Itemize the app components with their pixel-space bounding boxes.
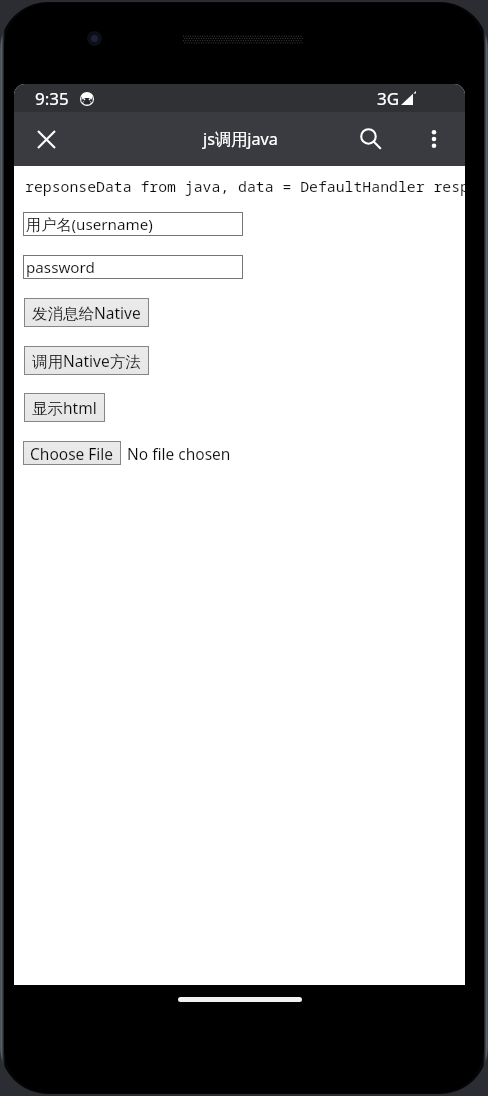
staticText: 发消息给Native — [32, 302, 141, 323]
button[interactable]: 显示html — [24, 393, 105, 422]
button[interactable]: Search — [351, 119, 391, 159]
button[interactable]: More options — [414, 119, 454, 159]
button[interactable]: password — [23, 255, 243, 279]
staticText: 用户名(username) — [26, 214, 153, 235]
staticText: repsonseData from java, data = DefaultHa… — [25, 176, 465, 196]
staticText: No file chosen — [127, 443, 231, 464]
staticText: 显示html — [32, 397, 97, 418]
staticText: 调用Native方法 — [32, 350, 141, 371]
button[interactable]: 用户名(username) — [23, 212, 243, 236]
staticText: Choose File — [30, 443, 114, 464]
staticText: password — [26, 257, 95, 278]
staticText: js调用java — [203, 128, 278, 150]
button[interactable]: Close — [26, 119, 66, 159]
button[interactable]: 调用Native方法 — [24, 346, 149, 375]
staticText: 9:35 — [35, 87, 69, 110]
button[interactable]: 发消息给Native — [24, 298, 149, 327]
button[interactable]: Choose File — [23, 441, 121, 465]
staticText: 3G — [377, 87, 400, 110]
